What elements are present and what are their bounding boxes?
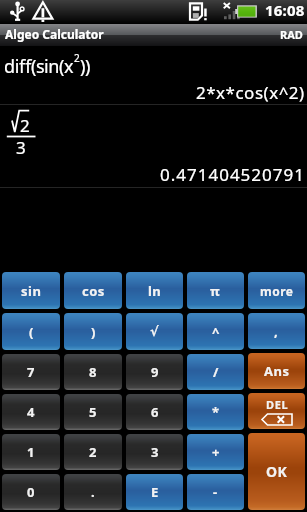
staticText: E [151,483,159,501]
button[interactable]: . [64,474,122,510]
staticText: - [213,483,218,501]
staticText: DEL [266,397,289,412]
staticText: cos [82,282,105,300]
button[interactable]: cos [64,272,122,309]
staticText: 7 [27,363,35,381]
staticText: Algeo Calculator [5,26,104,42]
button[interactable]: , [248,313,305,349]
button[interactable]: Ans [248,353,305,389]
staticText: 4 [27,403,35,421]
staticText: 8 [89,363,97,381]
button[interactable]: 8 [64,354,122,390]
staticText: / [213,363,219,381]
button[interactable]: 3 [126,434,183,470]
staticText: 6 [151,403,159,421]
staticText: 3 [151,443,159,461]
staticText: 2 [20,114,30,137]
button[interactable]: * [187,394,244,430]
button[interactable]: 2 [64,434,122,470]
button[interactable]: 6 [126,394,183,430]
button[interactable]: 4 [2,394,60,430]
staticText: 2*x*cos(x^2) [196,81,305,104]
button[interactable]: Delete [248,393,305,429]
button[interactable]: E [126,474,183,510]
button[interactable]: 5 [64,394,122,430]
staticText: 1 [27,443,35,461]
button[interactable]: √ [126,313,183,350]
staticText: 16:08 [265,0,305,20]
staticText: 2 [74,51,80,65]
button[interactable]: ( [2,313,60,350]
staticText: 2 [89,443,97,461]
button[interactable]: 1 [2,434,60,470]
staticText: √ [150,324,160,339]
staticText: 0.471404520791 [160,163,305,186]
staticText: 3 [16,136,26,159]
staticText: OK [266,462,288,481]
button[interactable]: π [187,272,244,309]
button[interactable]: ) [64,313,122,350]
staticText: sin [21,282,42,300]
button[interactable]: - [187,474,244,510]
button[interactable]: 0 [2,474,60,510]
staticText: * [212,403,220,421]
staticText: diff(sin(x [4,54,74,79]
button[interactable]: ^ [187,313,244,350]
staticText: , [274,322,279,340]
button[interactable]: 9 [126,354,183,390]
button[interactable]: 7 [2,354,60,390]
staticText: . [91,483,96,501]
staticText: RAD [280,27,303,42]
button[interactable]: ln [126,272,183,309]
staticText: more [260,283,294,299]
staticText: ) [91,323,96,341]
staticText: Ans [264,362,290,380]
staticText: ( [29,323,34,341]
button[interactable]: OK [248,433,305,510]
staticText: )) [80,54,90,79]
button[interactable]: more [248,272,305,309]
staticText: ln [148,282,162,300]
staticText: 0 [27,483,35,501]
staticText: π [210,282,221,300]
button[interactable]: / [187,354,244,390]
button[interactable]: + [187,434,244,470]
staticText: + [212,443,220,461]
staticText: ^ [212,323,220,341]
staticText: 5 [89,403,97,421]
button[interactable]: sin [2,272,60,309]
staticText: 9 [151,363,159,381]
